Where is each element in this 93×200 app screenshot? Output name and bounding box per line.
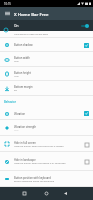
staticText: Button position with keyboard [14,176,51,180]
staticText: Behavior [4,100,16,104]
staticText: 70% [14,60,19,63]
staticText: Long press to open recent apps [14,33,49,36]
button[interactable]: On [0,20,93,31]
button[interactable]: Button width [0,52,93,67]
staticText: Vibration [14,112,26,116]
staticText: 10:15 [4,2,11,6]
staticText: Button shadow [14,43,33,47]
button[interactable]: Enabled [84,43,89,48]
button[interactable]: Home [41,188,52,199]
button[interactable]: Bottom margin [0,81,93,96]
button[interactable]: Disabled [84,159,89,164]
button[interactable]: Vibration [0,107,93,120]
staticText: Button height [14,71,31,75]
button[interactable]: Disabled [84,142,89,147]
button[interactable]: Back [60,188,71,199]
staticText: Button width [14,56,30,60]
staticText: Vibration strength [14,125,37,129]
staticText: 5% [14,89,18,92]
staticText: Bottom margin [14,85,33,89]
staticText: X Home Bar Free [14,11,49,17]
button[interactable]: Button height [0,67,93,81]
staticText: On [14,24,19,28]
staticText: —— [14,129,19,132]
button[interactable]: Hide in full screen [0,136,93,152]
button[interactable]: Vibration strength [0,120,93,136]
staticText: Hide in full screen [14,141,36,145]
staticText: Hide the button when the device is in la… [14,162,66,165]
staticText: Hide in landscape [14,158,36,162]
button[interactable]: Hide in landscape [0,152,93,171]
button[interactable]: Enabled [84,111,89,116]
button[interactable]: Button shadow [0,38,93,52]
button[interactable]: Open navigation drawer [0,7,14,20]
button[interactable]: Button position with keyboard [0,171,93,187]
staticText: Button displayed above the keyboard [14,180,55,183]
staticText: Hide the button when the status bar is h… [14,145,64,148]
staticText: 10% [14,75,19,78]
button[interactable]: Recent apps [19,188,30,199]
